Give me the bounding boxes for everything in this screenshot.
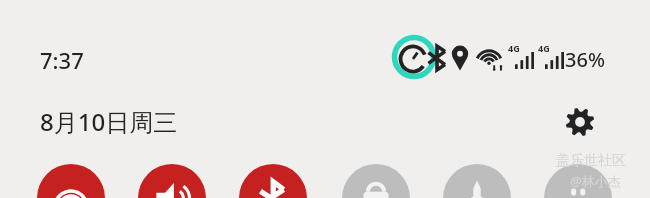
button[interactable]: Do not disturb — [544, 164, 612, 198]
staticText: 8月10日周三 — [40, 105, 178, 138]
staticText: 盖乐世社区 — [556, 152, 626, 170]
button[interactable]: Bluetooth — [239, 164, 307, 198]
staticText: 4G — [538, 42, 550, 54]
staticText: 36% — [565, 46, 605, 73]
button[interactable]: Wi-Fi — [37, 164, 105, 198]
button[interactable]: Lock — [342, 164, 410, 198]
button[interactable]: Sound — [138, 164, 206, 198]
staticText: @林小杰 — [570, 172, 621, 190]
staticText: 7:37 — [40, 45, 84, 75]
button[interactable]: Airplane mode — [443, 164, 511, 198]
staticText: 4G — [508, 42, 520, 54]
button[interactable]: Settings — [562, 104, 598, 140]
